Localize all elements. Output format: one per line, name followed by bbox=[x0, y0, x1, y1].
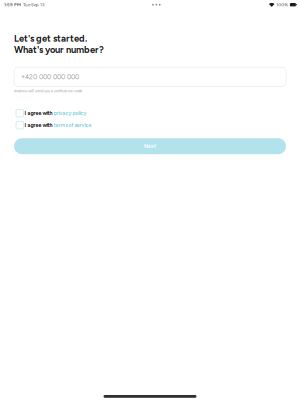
button[interactable]: I agree with bbox=[16, 120, 284, 130]
button[interactable]: Phone number bbox=[14, 67, 286, 86]
staticText: Tue Sep 13 bbox=[21, 2, 44, 7]
button[interactable]: I agree with bbox=[16, 108, 284, 118]
staticText: I agree with bbox=[23, 110, 53, 116]
staticText: 1:59 PM bbox=[4, 2, 21, 7]
staticText: privacy policy bbox=[53, 110, 86, 116]
staticText: I agree with bbox=[23, 122, 53, 128]
staticText: What's your number? bbox=[14, 44, 104, 55]
button[interactable]: Next bbox=[14, 138, 286, 154]
staticText: 100% bbox=[276, 2, 288, 7]
staticText: analeno will send you a verification cod… bbox=[14, 88, 82, 93]
staticText: Let's get started. bbox=[14, 33, 87, 44]
staticText: +420 000 000 000 bbox=[21, 73, 79, 81]
staticText: terms of service bbox=[53, 122, 91, 128]
staticText: Next bbox=[144, 143, 156, 149]
